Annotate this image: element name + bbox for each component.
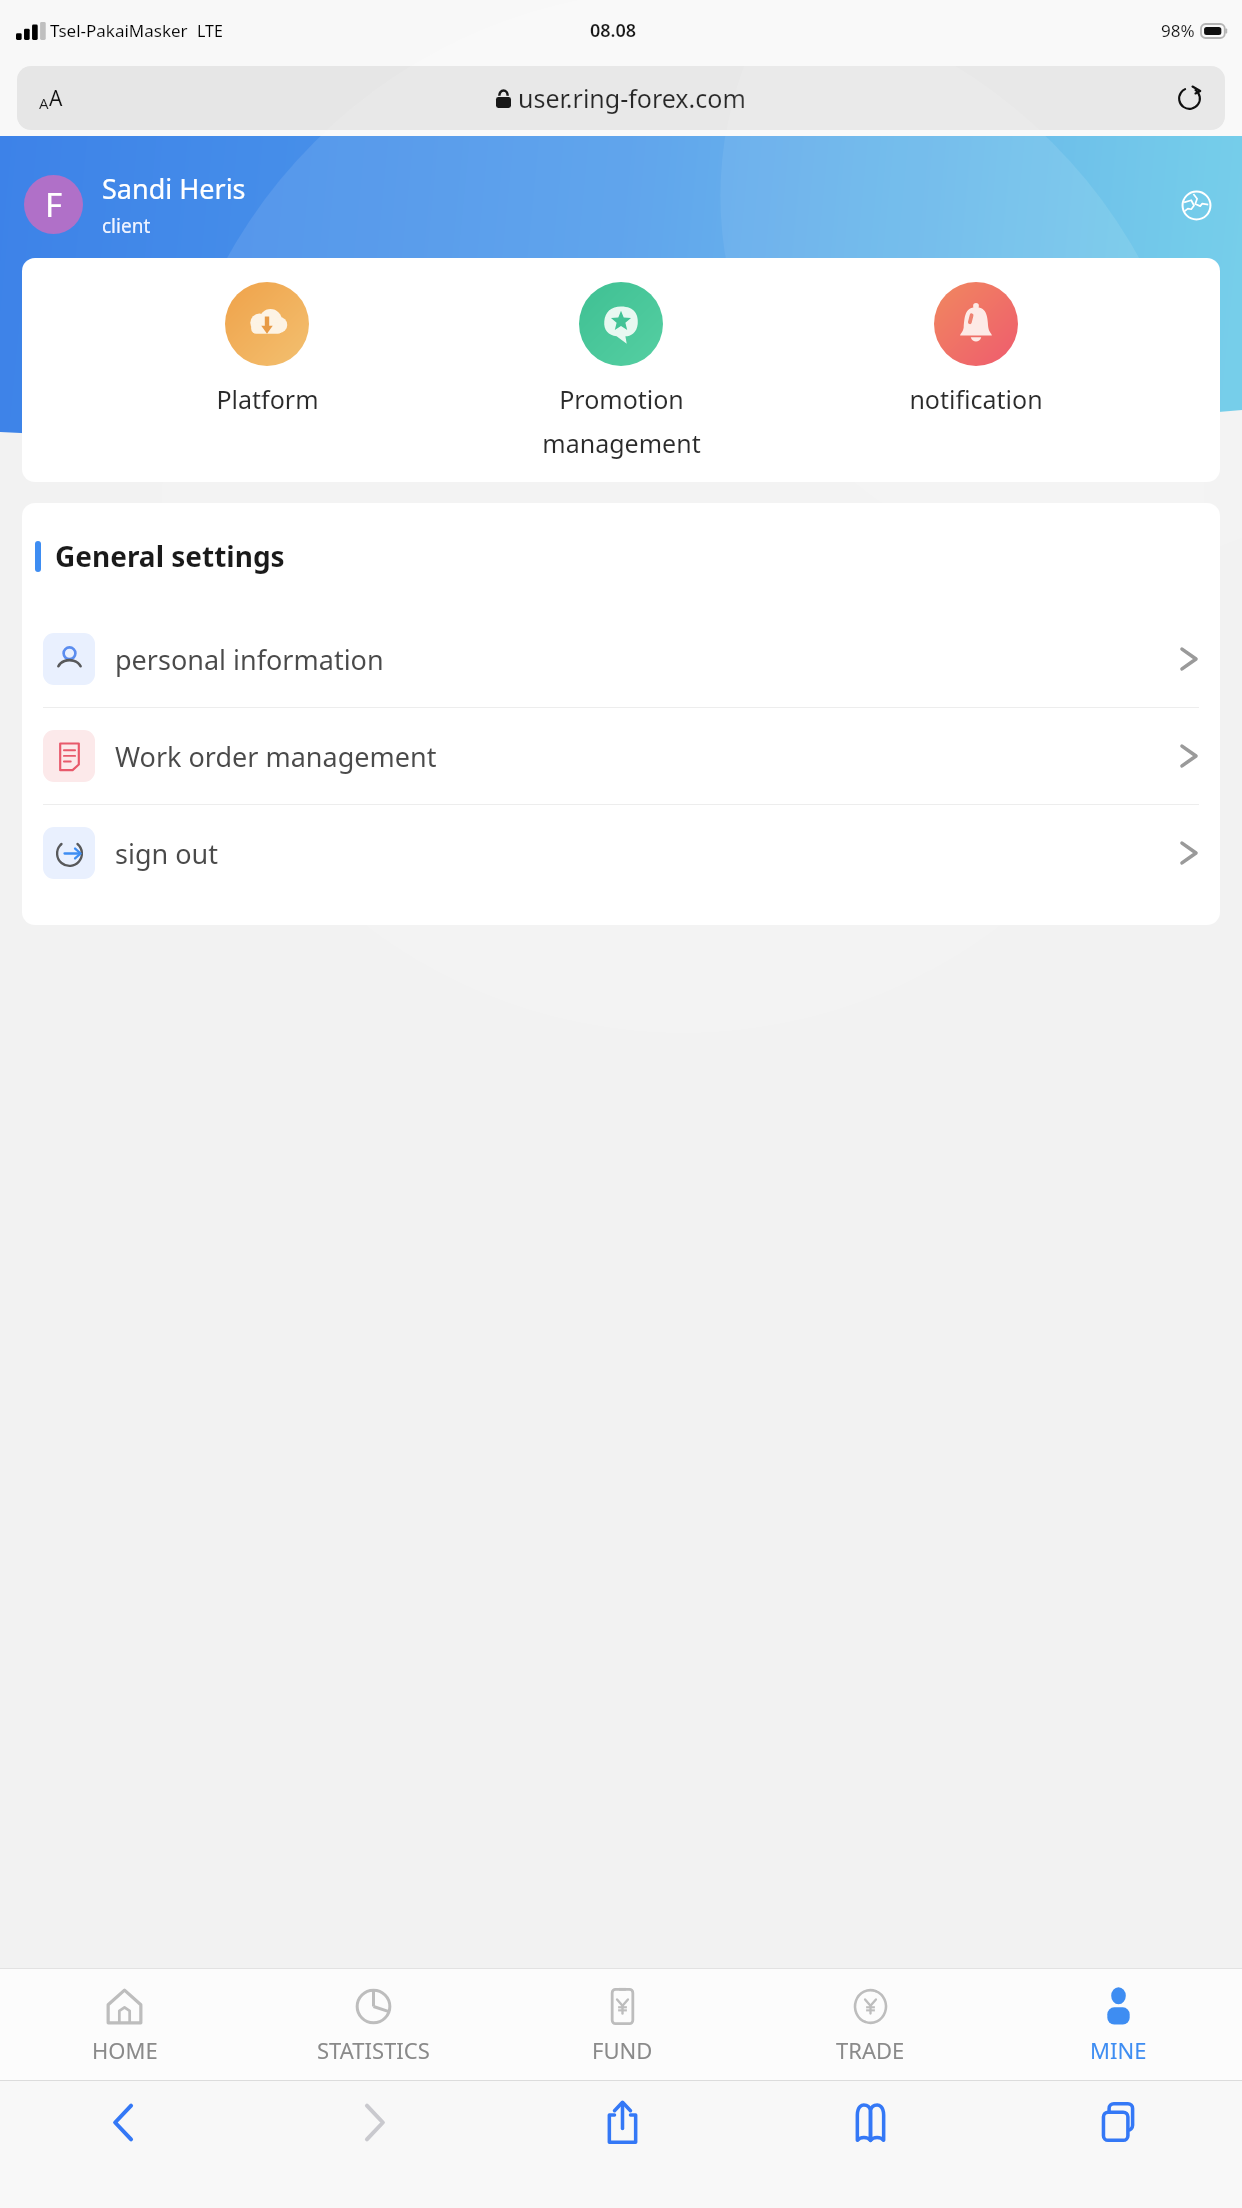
button[interactable]: sign out bbox=[22, 805, 1220, 901]
staticText: sign out bbox=[115, 835, 218, 872]
button[interactable]: Bookmarks bbox=[746, 2081, 994, 2208]
button[interactable]: HOME bbox=[0, 1969, 249, 2080]
staticText: TRADE bbox=[836, 2035, 905, 2065]
button[interactable]: Reload bbox=[1167, 76, 1211, 120]
staticText: personal information bbox=[115, 641, 384, 678]
button[interactable]: notification bbox=[866, 282, 1086, 416]
button[interactable]: Platform bbox=[157, 282, 377, 416]
button[interactable]: Language bbox=[1174, 183, 1218, 227]
button[interactable]: MINE bbox=[994, 1969, 1242, 2080]
staticText: management bbox=[542, 426, 701, 460]
staticText: user.ring-forex.com bbox=[518, 81, 746, 115]
staticText: notification bbox=[909, 382, 1043, 416]
staticText: FUND bbox=[592, 2035, 653, 2065]
button[interactable]: TRADE bbox=[746, 1969, 994, 2080]
button[interactable]: Share bbox=[498, 2081, 746, 2208]
staticText: MINE bbox=[1090, 2035, 1147, 2065]
staticText: 08.08 bbox=[590, 18, 637, 43]
button[interactable]: FUND bbox=[498, 1969, 746, 2080]
button[interactable]: Back bbox=[0, 2081, 249, 2208]
staticText: A bbox=[39, 93, 49, 113]
button[interactable]: STATISTICS bbox=[249, 1969, 498, 2080]
staticText: A bbox=[49, 84, 63, 113]
staticText: Sandi Heris bbox=[102, 170, 246, 207]
staticText: Platform bbox=[216, 382, 319, 416]
button[interactable]: A bbox=[17, 66, 1225, 130]
staticText: F bbox=[45, 182, 63, 227]
staticText: HOME bbox=[92, 2035, 158, 2065]
button[interactable]: Forward bbox=[249, 2081, 498, 2208]
staticText: General settings bbox=[55, 537, 285, 575]
button[interactable]: Work order management bbox=[22, 708, 1220, 804]
staticText: Work order management bbox=[115, 738, 437, 775]
staticText: Tsel-PakaiMasker bbox=[50, 19, 188, 42]
staticText: Promotion bbox=[559, 382, 684, 416]
button[interactable]: Promotion bbox=[511, 282, 731, 460]
staticText: STATISTICS bbox=[317, 2035, 430, 2065]
button[interactable]: F bbox=[24, 175, 83, 234]
staticText: 98% bbox=[1161, 19, 1195, 42]
button[interactable]: Tabs bbox=[994, 2081, 1242, 2208]
staticText: LTE bbox=[197, 20, 223, 42]
staticText: client bbox=[102, 213, 151, 239]
button[interactable]: personal information bbox=[22, 611, 1220, 707]
